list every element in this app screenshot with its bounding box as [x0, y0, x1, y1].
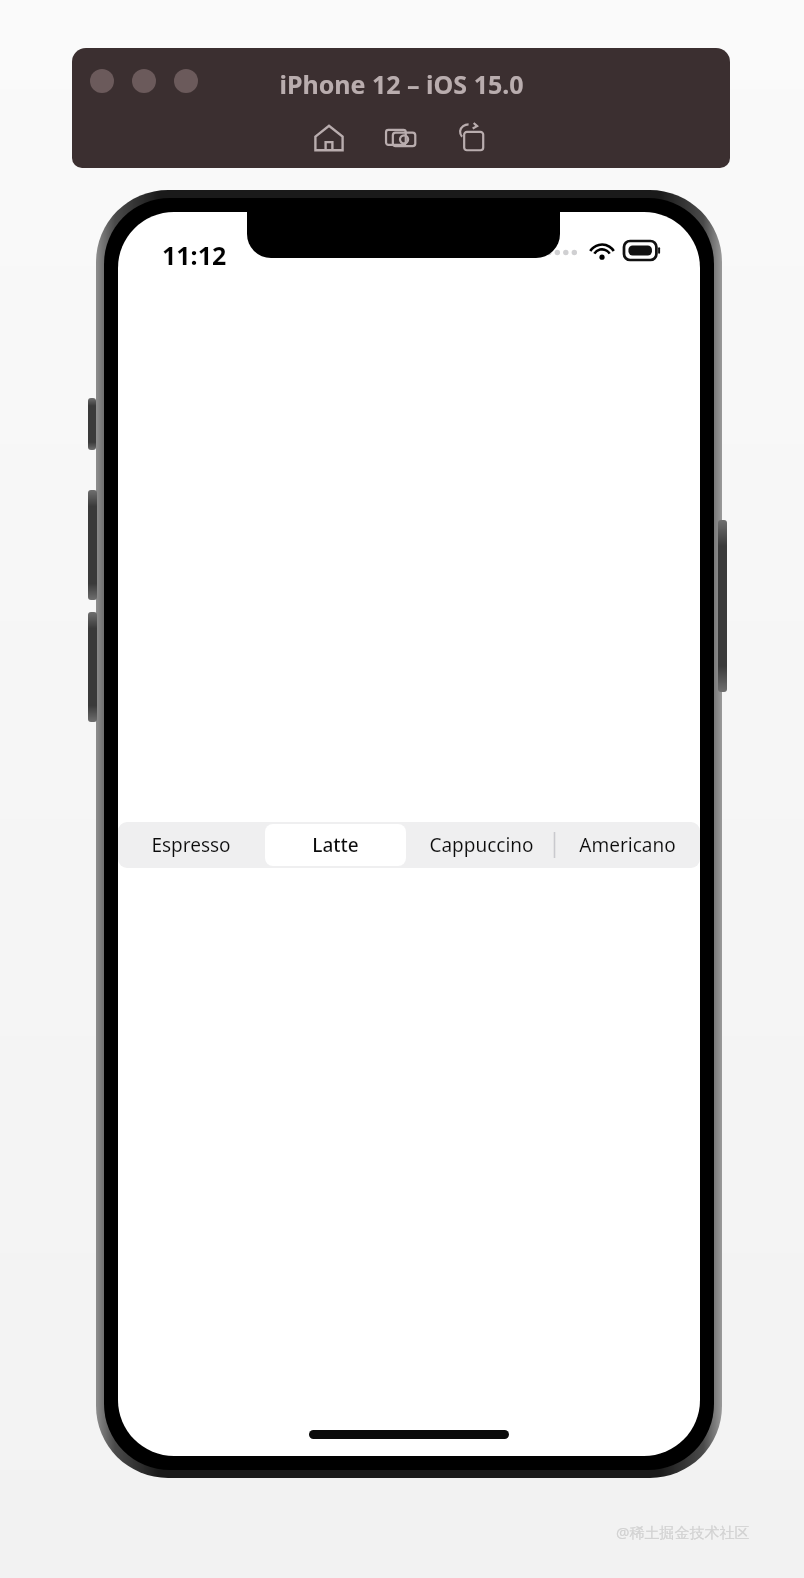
staticText: @稀土掘金技术社区	[616, 1522, 750, 1542]
button[interactable]: Screenshot	[381, 118, 421, 158]
staticText: Latte	[312, 832, 359, 858]
button[interactable]: Latte	[265, 824, 406, 866]
button[interactable]	[174, 69, 198, 93]
button[interactable]: Cappuccino	[410, 824, 552, 866]
button[interactable]	[90, 69, 114, 93]
button[interactable]	[132, 69, 156, 93]
button[interactable]: Home	[309, 118, 349, 158]
staticText: 11:12	[162, 238, 227, 272]
staticText: Cappuccino	[429, 832, 534, 858]
button[interactable]: Rotate	[453, 118, 493, 158]
button[interactable]: Americano	[556, 824, 698, 866]
staticText: iPhone 12 – iOS 15.0	[279, 67, 524, 101]
button[interactable]: Espresso	[120, 824, 261, 866]
staticText: Espresso	[151, 832, 231, 858]
staticText: Americano	[579, 832, 676, 858]
